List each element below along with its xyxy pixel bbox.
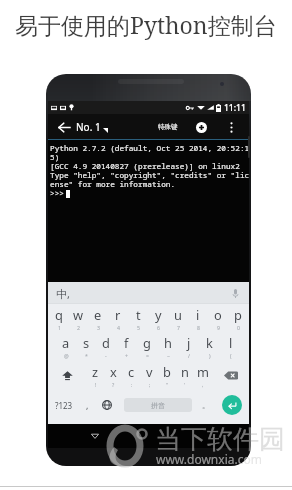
staticText: d xyxy=(102,334,110,351)
button[interactable]: v xyxy=(140,361,158,390)
button[interactable]: Voice input xyxy=(229,287,241,299)
staticText: www.downxia.com xyxy=(156,451,262,467)
staticText: , xyxy=(202,381,204,388)
staticText: m xyxy=(197,363,209,380)
staticText: 1 xyxy=(58,324,61,331)
staticText: 0 xyxy=(237,324,240,331)
button[interactable]: j xyxy=(178,332,199,361)
staticText: >>> xyxy=(50,188,64,199)
staticText: Type "help", "copyright", "credits" or "… xyxy=(50,170,249,181)
staticText: e xyxy=(94,306,102,323)
button[interactable]: More options xyxy=(222,118,240,136)
staticText: No. 1 xyxy=(76,120,101,134)
staticText: ense" for more information. xyxy=(50,179,176,190)
staticText: 当下软件园 xyxy=(155,423,285,456)
button[interactable]: ?123 xyxy=(48,390,79,420)
staticText: f xyxy=(124,334,129,351)
button[interactable]: b xyxy=(158,361,176,390)
staticText: 拼音 xyxy=(151,401,165,410)
staticText: ' xyxy=(184,381,186,388)
staticText: t xyxy=(136,306,141,323)
button[interactable]: p xyxy=(228,304,248,332)
button[interactable]: Back xyxy=(55,118,73,136)
button[interactable]: y xyxy=(148,304,168,332)
button[interactable]: d xyxy=(96,332,116,361)
button[interactable]: x xyxy=(104,361,122,390)
staticText: = xyxy=(146,352,149,359)
staticText: o xyxy=(214,306,222,323)
staticText: : xyxy=(131,381,133,388)
button[interactable]: Hide keyboard xyxy=(88,429,102,443)
button[interactable]: s xyxy=(76,332,96,361)
staticText: [GCC 4.9 20140827 (prerelease)] on linux… xyxy=(50,161,240,172)
staticText: 4 xyxy=(117,324,120,331)
button[interactable]: m xyxy=(194,361,212,390)
staticText: ?123 xyxy=(55,400,73,411)
staticText: h xyxy=(164,334,172,351)
staticText: - xyxy=(105,352,107,359)
button[interactable]: o xyxy=(208,304,228,332)
staticText: q xyxy=(55,306,63,323)
staticText: ; xyxy=(149,381,151,388)
staticText: ( xyxy=(230,352,232,359)
staticText: x xyxy=(110,363,117,380)
staticText: k xyxy=(206,334,213,351)
button[interactable]: l xyxy=(220,332,241,361)
staticText: * xyxy=(85,352,88,359)
button[interactable]: r xyxy=(108,304,128,332)
button[interactable]: , xyxy=(79,390,95,420)
staticText: ? xyxy=(112,381,115,388)
button[interactable]: 拼音 xyxy=(124,398,192,412)
button[interactable]: t xyxy=(128,304,148,332)
staticText: / xyxy=(188,352,190,359)
button[interactable]: h xyxy=(157,332,178,361)
staticText: + xyxy=(125,352,128,359)
staticText: 5 xyxy=(137,324,140,331)
staticText: 5) xyxy=(50,152,60,163)
staticText: 中, xyxy=(56,286,70,301)
button[interactable]: c xyxy=(122,361,140,390)
staticText: n xyxy=(181,363,189,380)
staticText: l xyxy=(229,334,233,351)
button[interactable]: e xyxy=(88,304,108,332)
button[interactable]: w xyxy=(68,304,88,332)
button[interactable]: a xyxy=(56,332,76,361)
button[interactable]: Shift xyxy=(48,361,86,390)
staticText: u xyxy=(174,306,182,323)
button[interactable]: n xyxy=(176,361,194,390)
staticText: r xyxy=(115,306,121,323)
staticText: 。 xyxy=(202,400,210,410)
button[interactable]: f xyxy=(116,332,136,361)
staticText: 易于使用的Python控制台 xyxy=(15,9,277,40)
staticText: g xyxy=(143,334,151,351)
button[interactable]: Add xyxy=(191,117,211,137)
button[interactable]: Change keyboard xyxy=(95,390,119,420)
button[interactable]: Backspace xyxy=(212,361,249,390)
button[interactable]: q xyxy=(49,304,68,332)
staticText: 2 xyxy=(77,324,80,331)
button[interactable]: Enter xyxy=(222,395,242,415)
button[interactable]: g xyxy=(136,332,157,361)
button[interactable]: u xyxy=(168,304,188,332)
staticText: 特殊键 xyxy=(158,123,178,131)
button[interactable]: 。 xyxy=(197,390,215,420)
staticText: s xyxy=(83,334,90,351)
button[interactable]: k xyxy=(199,332,220,361)
button[interactable]: z xyxy=(86,361,104,390)
staticText: w xyxy=(73,306,84,323)
staticText: ! xyxy=(95,381,97,388)
staticText: @ xyxy=(64,352,69,359)
staticText: ~ xyxy=(167,352,170,359)
staticText: 3 xyxy=(97,324,100,331)
staticText: v xyxy=(146,363,153,380)
staticText: 9 xyxy=(217,324,220,331)
button[interactable]: i xyxy=(188,304,208,332)
button[interactable]: 特殊键 xyxy=(156,118,180,136)
staticText: , xyxy=(86,399,89,411)
staticText: 11:11 xyxy=(224,102,246,114)
staticText: p xyxy=(234,306,242,323)
staticText: j xyxy=(187,334,191,351)
staticText: " xyxy=(166,381,169,388)
staticText: c xyxy=(128,363,135,380)
staticText: 6 xyxy=(157,324,160,331)
